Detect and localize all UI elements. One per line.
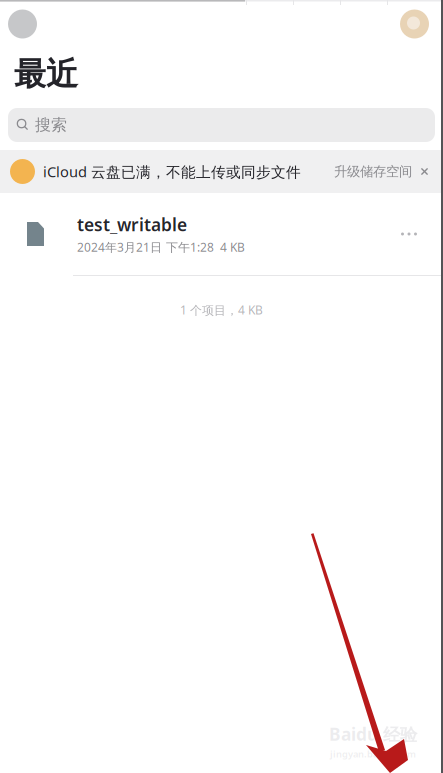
button[interactable]: Sidebar: [8, 9, 37, 38]
staticText: 最近: [14, 54, 78, 94]
staticText: 2024年3月21日 下午1:28 4 KB: [77, 239, 245, 255]
staticText: iCloud 云盘已满，不能上传或同步文件: [43, 162, 301, 181]
button[interactable]: 搜索: [0, 108, 443, 142]
button[interactable]: test_writable: [0, 193, 443, 275]
staticText: test_writable: [77, 213, 187, 236]
staticText: Baidu 经验: [329, 722, 417, 746]
staticText: 搜索: [35, 115, 67, 135]
button[interactable]: iCloud 云盘已满，不能上传或同步文件: [0, 150, 443, 193]
staticText: 升级储存空间: [334, 163, 412, 180]
button[interactable]: Account: [400, 9, 429, 38]
staticText: jingyan.baidu.com: [330, 748, 416, 760]
staticText: 1 个项目，4 KB: [180, 302, 263, 318]
